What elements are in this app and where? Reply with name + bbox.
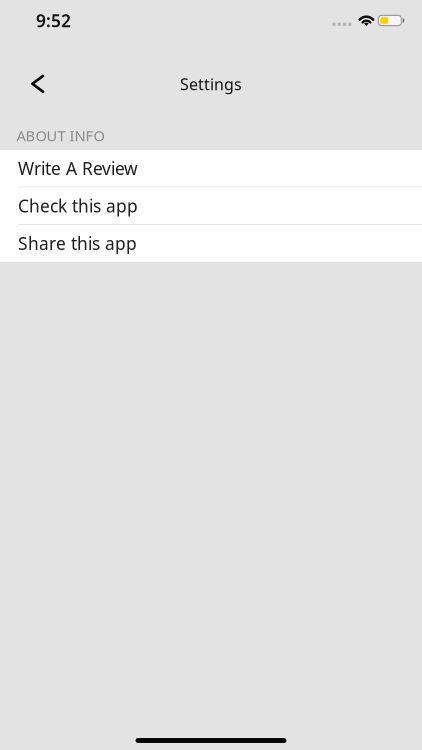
staticText: Check this app bbox=[18, 194, 138, 217]
button[interactable]: Write A Review bbox=[0, 150, 422, 187]
staticText: ABOUT INFO bbox=[16, 126, 104, 145]
button[interactable]: Back bbox=[0, 62, 74, 106]
staticText: Settings bbox=[180, 73, 242, 95]
staticText: 9:52 bbox=[36, 9, 71, 32]
button[interactable]: Share this app bbox=[0, 225, 422, 262]
button[interactable]: Check this app bbox=[0, 187, 422, 224]
staticText: Share this app bbox=[18, 232, 137, 255]
staticText: Write A Review bbox=[18, 157, 138, 180]
